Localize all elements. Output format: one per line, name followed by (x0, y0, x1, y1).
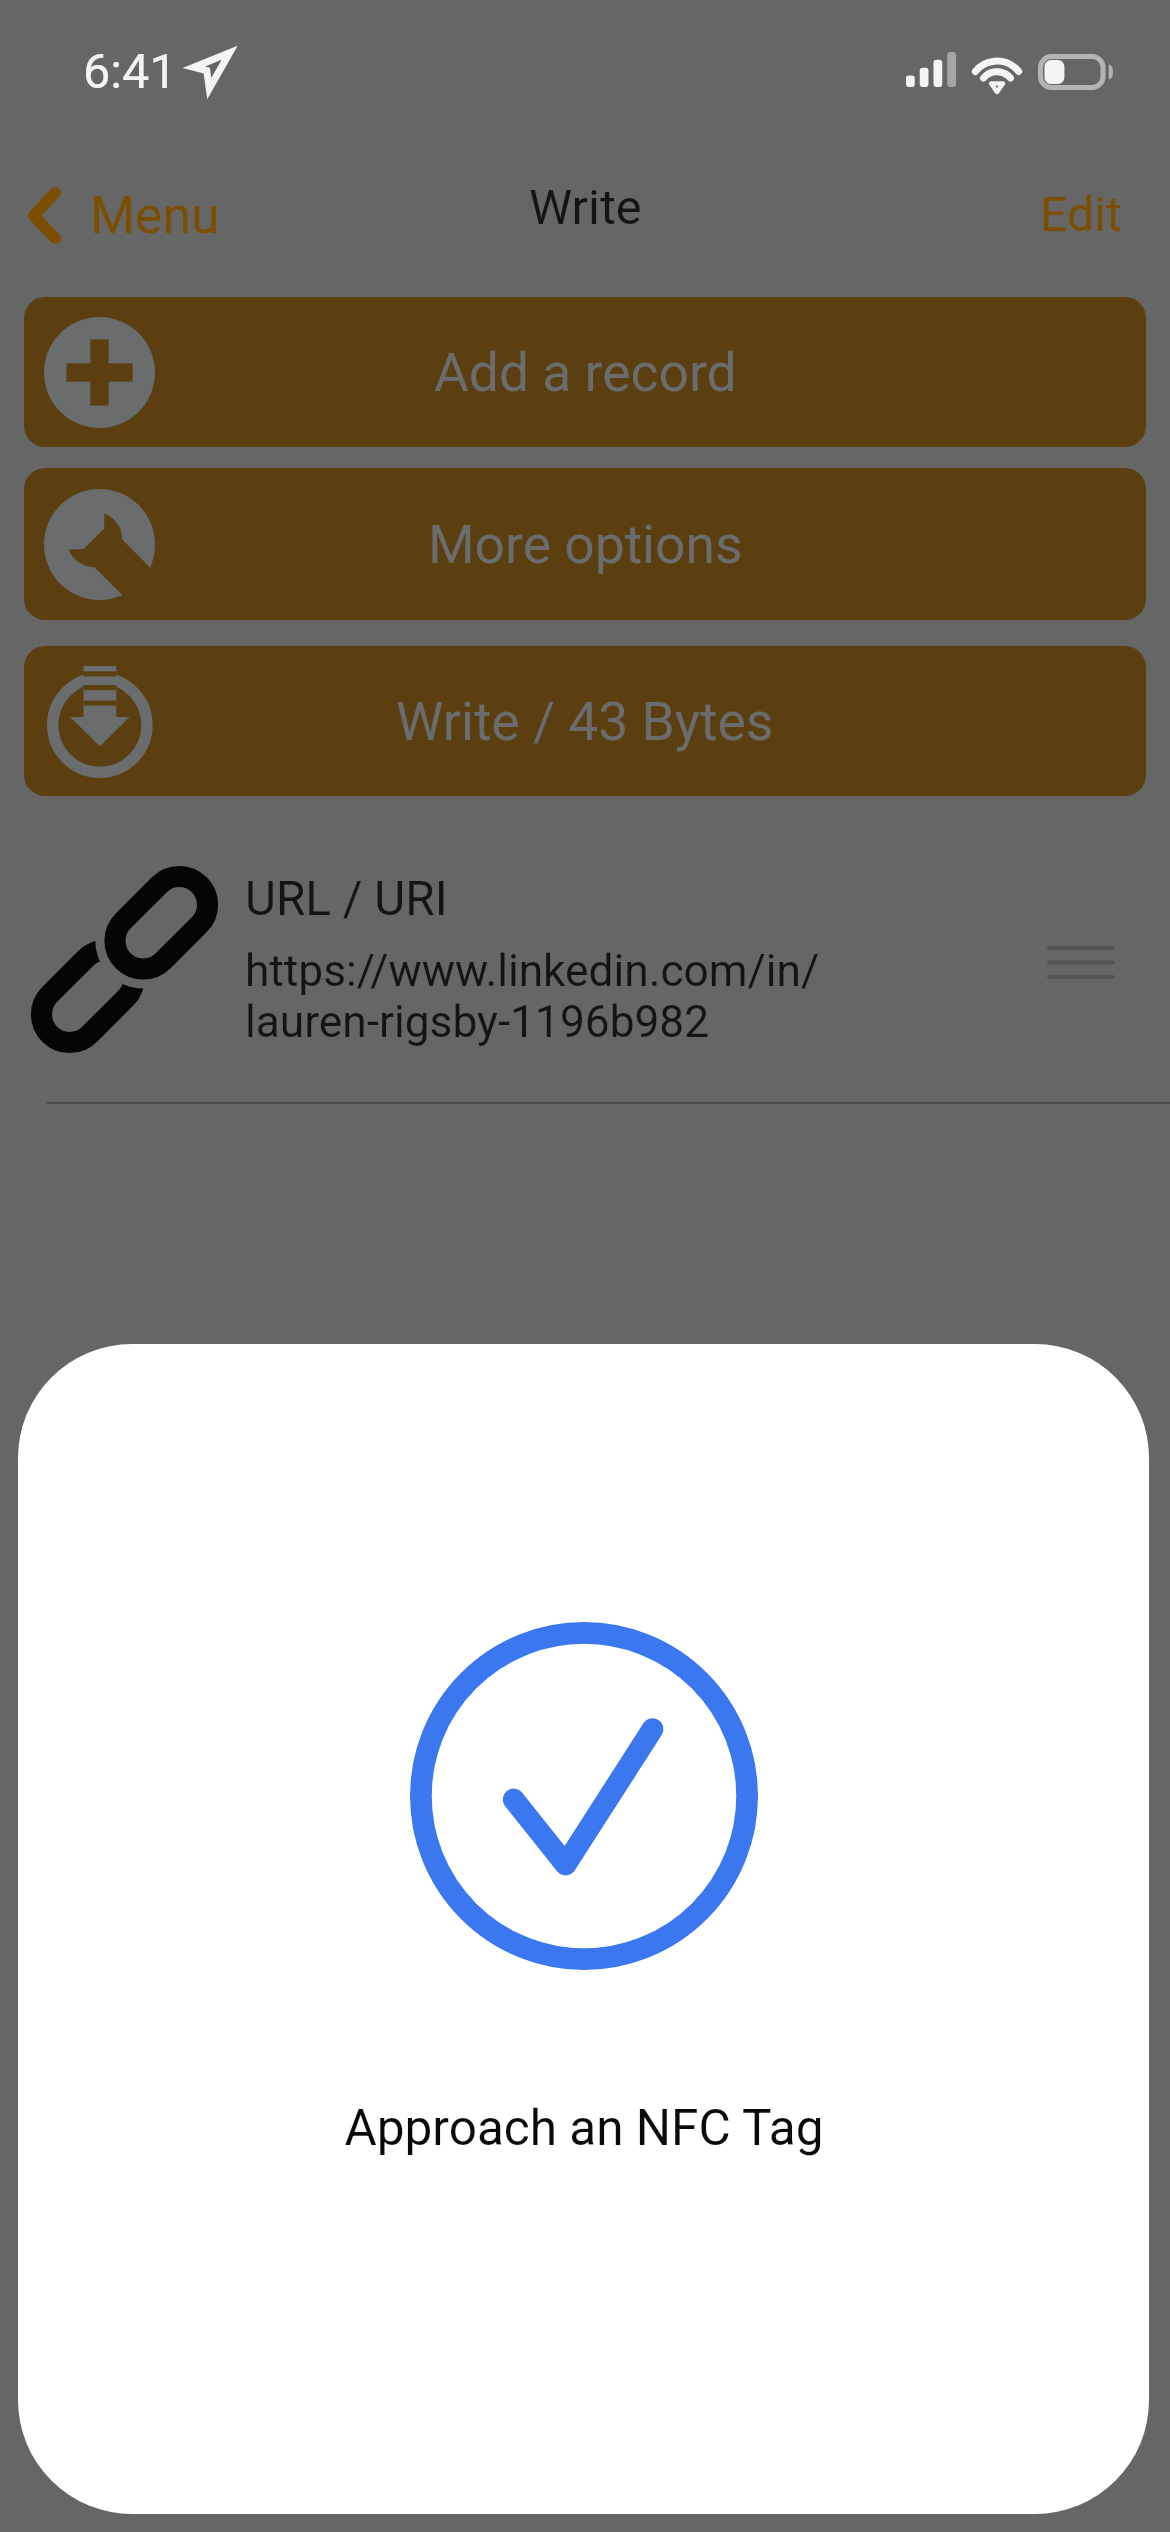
staticText: 6:41 (83, 43, 177, 100)
staticText: URL / URI (245, 871, 448, 927)
button[interactable]: Add a record (24, 297, 1146, 447)
button[interactable]: More options (24, 468, 1146, 620)
staticText: Write / 43 Bytes (396, 690, 774, 753)
staticText: Approach an NFC Tag (344, 2099, 824, 2157)
staticText: Write (529, 179, 642, 236)
button[interactable]: Reorder record (1031, 922, 1131, 997)
staticText: Add a record (434, 341, 737, 404)
button[interactable]: URL / URI (0, 871, 1170, 1048)
button[interactable]: Write / 43 Bytes (24, 646, 1146, 796)
staticText: More options (428, 513, 743, 576)
staticText: Menu (90, 185, 220, 245)
staticText: https://www.linkedin.com/in/ lauren-rigs… (245, 945, 820, 1048)
button[interactable]: Menu (0, 167, 250, 263)
button[interactable]: Edit (998, 168, 1170, 261)
staticText: Edit (1040, 186, 1122, 243)
